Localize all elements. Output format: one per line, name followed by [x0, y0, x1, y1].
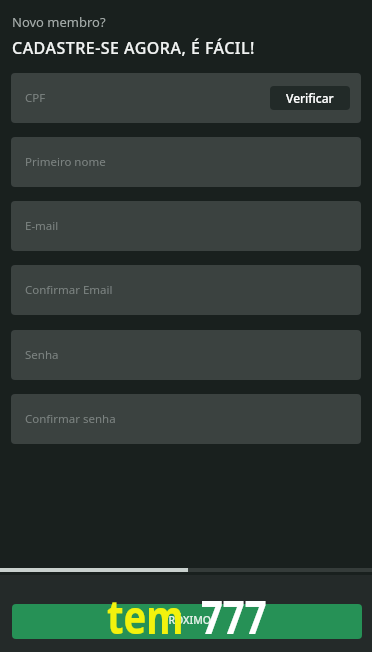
button[interactable]: Confirmar Email: [11, 265, 361, 315]
staticText: Senha: [25, 347, 59, 363]
button[interactable]: CPF: [11, 73, 361, 123]
staticText: Verificar: [286, 90, 334, 106]
staticText: PRÓXIMO: [162, 613, 212, 627]
button[interactable]: PRÓXIMO: [12, 604, 362, 639]
button[interactable]: E-mail: [11, 201, 361, 251]
staticText: CPF: [25, 90, 46, 106]
button[interactable]: Senha: [11, 330, 361, 380]
staticText: Primeiro nome: [25, 154, 106, 170]
button[interactable]: Confirmar senha: [11, 394, 361, 444]
staticText: Novo membro?: [12, 13, 106, 31]
staticText: tem: [107, 585, 184, 648]
staticText: 777: [201, 585, 267, 648]
staticText: E-mail: [25, 218, 59, 234]
staticText: Confirmar Email: [25, 282, 113, 298]
button[interactable]: Primeiro nome: [11, 137, 361, 187]
button[interactable]: Verificar: [270, 86, 350, 110]
staticText: Confirmar senha: [25, 411, 116, 427]
staticText: CADASTRE-SE AGORA, É FÁCIL!: [12, 37, 255, 59]
